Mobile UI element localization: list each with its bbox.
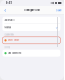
staticText: Configure Unit [24, 9, 40, 12]
button[interactable]: Manual [2, 24, 60, 31]
staticText: Manual [4, 26, 11, 29]
staticText: ✓ [55, 25, 58, 30]
staticText: Reset Device [8, 39, 19, 41]
button[interactable]: Reset Device [2, 37, 60, 44]
button[interactable]: Back [1, 6, 10, 14]
staticText: CALIBRATION [4, 34, 13, 36]
staticText: Save [56, 9, 61, 12]
staticText: Automatic [4, 19, 14, 21]
button[interactable]: Save [55, 6, 63, 14]
staticText: STATUS [4, 47, 10, 49]
staticText: ‹ [4, 7, 6, 13]
button[interactable]: Automatic [2, 17, 60, 24]
staticText: Unit Connected [8, 52, 21, 54]
staticText: 9:41 [5, 1, 11, 5]
